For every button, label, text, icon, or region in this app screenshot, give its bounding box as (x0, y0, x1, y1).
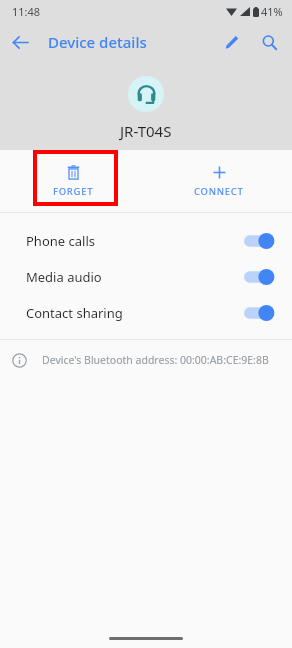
staticText: Media audio (26, 268, 102, 286)
staticText: Phone calls (26, 232, 95, 250)
button[interactable]: Contact sharing (0, 295, 292, 331)
button[interactable]: CONNECT (146, 150, 292, 212)
staticText: Contact sharing (26, 304, 123, 322)
button[interactable]: Search (250, 23, 288, 61)
button[interactable]: Media audio (0, 259, 292, 295)
staticText: JR-T04S (120, 121, 172, 141)
button[interactable]: Phone calls (0, 223, 292, 259)
staticText: Device details (48, 32, 147, 52)
staticText: Device's Bluetooth address: 00:00:AB:CE:… (42, 353, 269, 367)
staticText: CONNECT (194, 185, 244, 198)
staticText: 11:48 (12, 4, 41, 19)
button[interactable]: Rename (212, 23, 250, 61)
staticText: 41% (261, 4, 283, 19)
staticText: FORGET (53, 185, 94, 198)
button[interactable]: Back (0, 22, 40, 62)
button[interactable]: FORGET (0, 150, 146, 212)
